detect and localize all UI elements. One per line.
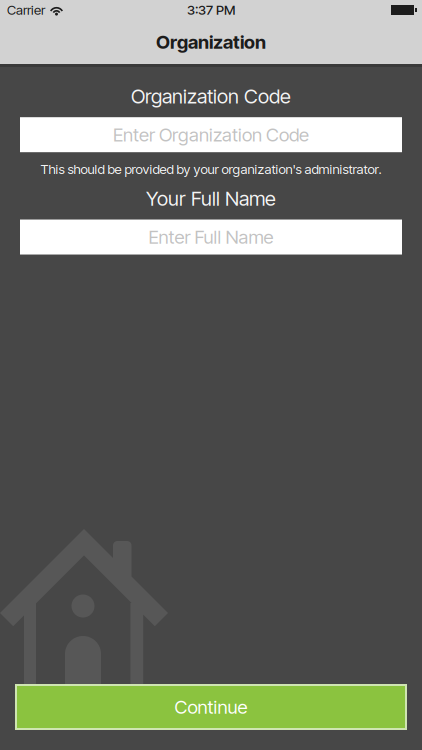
staticText: Carrier	[7, 2, 45, 18]
button[interactable]: Enter Organization Code	[20, 117, 402, 152]
button[interactable]: Continue	[15, 684, 407, 730]
staticText: Continue	[174, 696, 247, 718]
staticText: Your Full Name	[146, 186, 276, 210]
staticText: Organization Code	[131, 84, 291, 108]
staticText: 3:37 PM	[187, 2, 235, 18]
staticText: Enter Full Name	[148, 226, 273, 248]
staticText: Organization	[156, 31, 266, 53]
button[interactable]: Enter Full Name	[20, 219, 402, 254]
staticText: This should be provided by your organiza…	[40, 161, 381, 177]
staticText: Enter Organization Code	[113, 123, 309, 146]
